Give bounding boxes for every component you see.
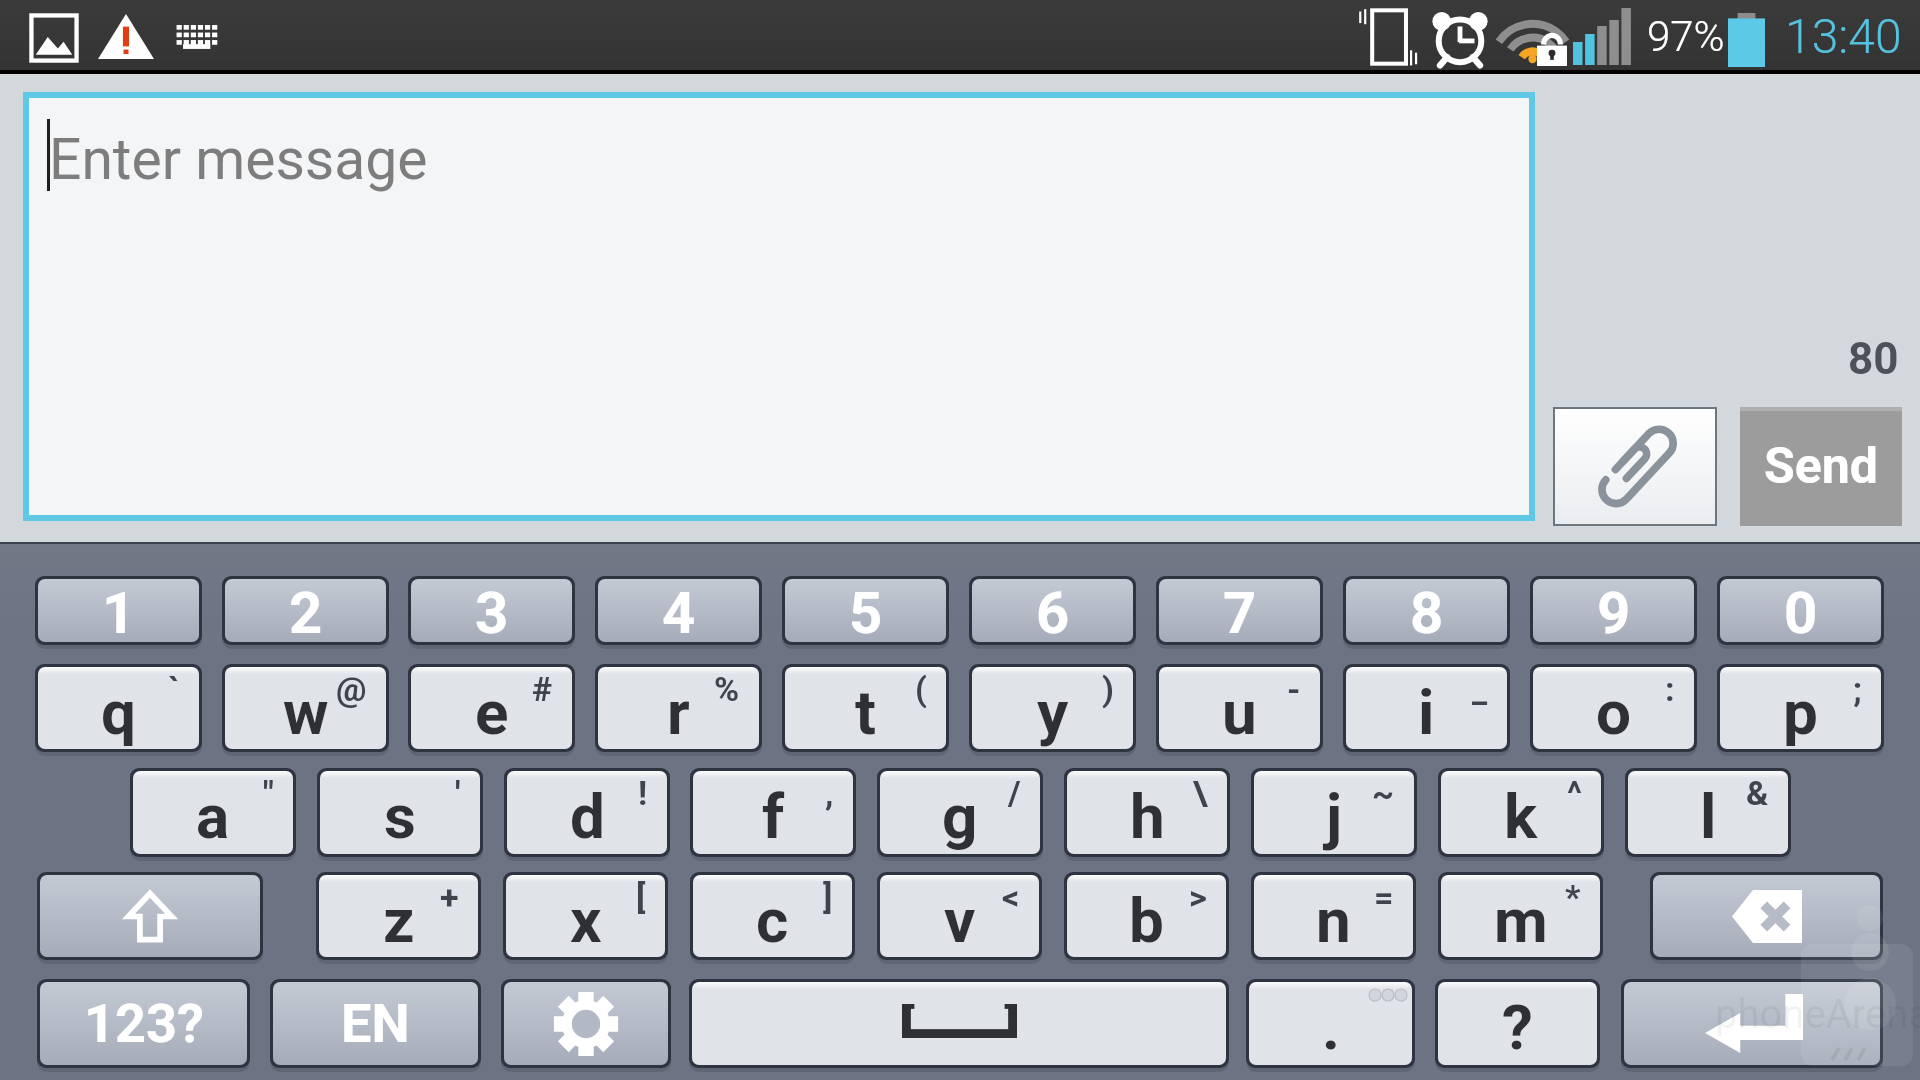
button[interactable]: k [1441,771,1601,854]
staticText: ^ [1567,773,1582,813]
staticText: 9 [1597,579,1631,642]
staticText: p [1783,676,1818,749]
button[interactable]: s [320,771,480,854]
staticText: m [1494,884,1548,957]
button[interactable]: Send [1740,407,1902,526]
staticText: , [825,773,834,813]
staticText: : [1665,669,1675,709]
button[interactable]: j [1254,771,1414,854]
button[interactable]: 3 [411,579,572,642]
button[interactable]: c [693,875,852,957]
button[interactable]: f [693,771,853,854]
button[interactable]: b [1067,875,1226,957]
button[interactable]: a [133,771,293,854]
staticText: " [263,773,274,813]
staticText: u [1222,676,1257,749]
staticText: ' [455,773,461,813]
button[interactable]: o [1533,667,1694,749]
button[interactable]: 8 [1346,579,1507,642]
button[interactable]: u [1159,667,1320,749]
staticText: r [667,676,690,749]
staticText: \ [1193,773,1208,813]
staticText: w [283,676,329,749]
staticText: / [1008,773,1021,813]
button[interactable]: ? [1438,982,1597,1065]
button[interactable]: v [880,875,1039,957]
button[interactable]: 6 [972,579,1133,642]
button[interactable]: 9 [1533,579,1694,642]
staticText: v [944,884,976,957]
staticText: f [762,780,785,853]
staticText: h [1130,780,1165,853]
staticText: 3 [475,579,509,642]
button[interactable]: 2 [225,579,386,642]
staticText: . [1322,991,1340,1064]
button[interactable]: p [1720,667,1881,749]
button[interactable]: . [1249,982,1412,1065]
staticText: a [196,780,230,853]
button[interactable]: 123? [40,982,247,1065]
staticText: ( [915,669,927,709]
button[interactable]: m [1441,875,1600,957]
staticText: 4 [662,579,696,642]
button[interactable]: i [1346,667,1507,749]
button[interactable]: e [411,667,572,749]
button[interactable]: 0 [1720,579,1881,642]
button[interactable]: 4 [598,579,759,642]
staticText: & [1746,773,1769,813]
button[interactable]: g [880,771,1040,854]
button[interactable]: d [507,771,667,854]
staticText: 1 [102,579,136,642]
staticText: 8 [1410,579,1444,642]
staticText: o [1596,676,1631,749]
staticText: Send [1764,437,1878,496]
staticText: e [475,676,509,749]
button[interactable]: w [225,667,386,749]
staticText: s [384,780,416,853]
staticText: z [383,884,415,957]
staticText: 123? [84,992,204,1055]
button[interactable]: l [1628,771,1788,854]
staticText: g [942,780,978,853]
staticText: j [1326,780,1343,853]
staticText: ] [823,877,833,917]
button[interactable]: Settings [504,982,668,1065]
staticText: 80 [1848,333,1899,385]
button[interactable]: Attach [1555,409,1715,524]
staticText: _ [1472,669,1488,709]
button[interactable]: 5 [785,579,946,642]
staticText: [ [636,877,646,917]
staticText: c [756,884,789,957]
staticText: ) [1102,669,1114,709]
staticText: d [570,780,605,853]
staticText: @ [336,669,367,709]
button[interactable]: x [506,875,665,957]
staticText: # [532,669,553,709]
staticText: b [1129,884,1164,957]
button[interactable]: q [38,667,199,749]
button[interactable]: Backspace [1653,875,1880,957]
button[interactable]: Enter [1624,982,1880,1065]
staticText: 13:40 [1785,8,1902,64]
button[interactable]: 1 [38,579,199,642]
button[interactable]: h [1067,771,1227,854]
staticText: ? [1502,991,1533,1064]
button[interactable]: y [972,667,1133,749]
button[interactable]: n [1254,875,1413,957]
button[interactable]: t [785,667,946,749]
staticText: ` [168,669,180,709]
staticText: EN [341,992,410,1055]
button[interactable]: Enter message [29,98,1529,515]
button[interactable]: EN [273,982,478,1065]
staticText: t [855,676,876,749]
button[interactable]: 7 [1159,579,1320,642]
button[interactable]: r [598,667,759,749]
staticText: x [570,884,602,957]
staticText: 2 [289,579,323,642]
button[interactable]: Space [692,982,1226,1065]
button[interactable]: z [319,875,478,957]
button[interactable]: Shift [40,875,260,957]
staticText: % [714,669,740,709]
staticText: l [1700,780,1717,853]
staticText: - [1287,669,1301,709]
